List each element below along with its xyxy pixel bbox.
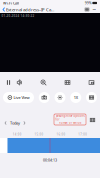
staticText: Missing/filter options for <box>55 114 84 121</box>
button[interactable]: 1X <box>70 92 81 103</box>
button[interactable]: Mute <box>14 77 25 88</box>
staticText: External address–IP Ca… <box>6 7 54 12</box>
staticText: 1X <box>74 95 78 100</box>
button[interactable]: External address–IP Ca… <box>2 6 54 13</box>
button[interactable]: Stream quality <box>86 92 97 103</box>
staticText: 00:04:13 <box>43 158 57 162</box>
button[interactable]: Image settings <box>54 92 65 103</box>
button[interactable]: Previous day <box>2 118 8 128</box>
button[interactable]: Live View <box>3 92 34 103</box>
button[interactable]: Digital zoom <box>38 77 49 88</box>
staticText: ••• <box>92 7 95 12</box>
button[interactable]: More options <box>90 6 97 13</box>
staticText: human or vehicle <box>59 121 81 125</box>
button[interactable]: Layout <box>83 6 90 13</box>
button[interactable]: Filter events <box>88 115 97 124</box>
button[interactable]: Today <box>8 118 21 128</box>
staticText: 16:00 <box>56 133 65 136</box>
button[interactable]: Next day <box>21 118 27 128</box>
button[interactable]: Picture in picture <box>86 77 97 88</box>
button[interactable]: Split view <box>62 77 73 88</box>
staticText: Live View <box>13 95 29 100</box>
staticText: Today <box>10 120 20 126</box>
staticText: Wi-Fi Call <box>3 0 19 5</box>
staticText: 99% <box>85 1 92 5</box>
button[interactable]: Snapshot <box>39 92 50 103</box>
staticText: 17:00 <box>78 133 87 136</box>
staticText: 14:00 <box>13 133 22 136</box>
staticText: 15:00 <box>35 133 44 136</box>
button[interactable]: Pause <box>3 77 14 88</box>
staticText: 01-20-2024 14:30:22 <box>1 14 34 18</box>
